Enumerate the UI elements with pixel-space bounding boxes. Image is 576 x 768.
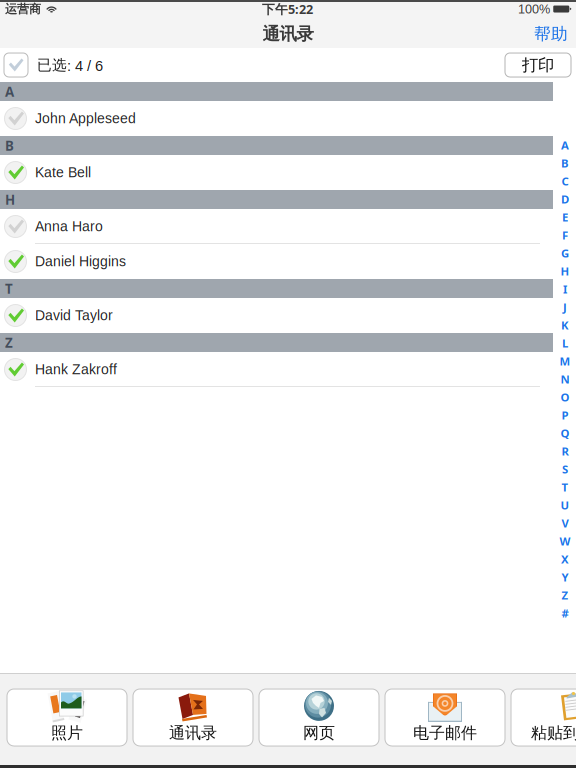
staticText: H: [560, 263, 569, 279]
button[interactable]: Q: [554, 424, 576, 442]
button[interactable]: 照片: [7, 689, 127, 746]
staticText: I: [563, 281, 567, 297]
button[interactable]: W: [554, 532, 576, 550]
staticText: 电子邮件: [413, 723, 477, 743]
staticText: David Taylor: [35, 308, 113, 323]
button[interactable]: I: [554, 280, 576, 298]
staticText: 粘贴到打印: [531, 723, 576, 743]
button[interactable]: X: [554, 550, 576, 568]
staticText: 下午5:22: [262, 0, 313, 18]
staticText: C: [561, 173, 568, 189]
staticText: Z: [561, 587, 568, 603]
button[interactable]: C: [554, 172, 576, 190]
staticText: A: [5, 82, 14, 101]
button[interactable]: V: [554, 514, 576, 532]
staticText: S: [562, 461, 568, 477]
button[interactable]: H: [554, 262, 576, 280]
button[interactable]: 帮助: [534, 18, 576, 49]
button[interactable]: 电子邮件: [385, 689, 505, 746]
button[interactable]: #: [554, 604, 576, 622]
staticText: 照片: [51, 723, 83, 743]
button[interactable]: U: [554, 496, 576, 514]
staticText: Kate Bell: [35, 165, 91, 180]
button[interactable]: O: [554, 388, 576, 406]
staticText: X: [561, 551, 569, 567]
staticText: Q: [560, 425, 569, 441]
staticText: 运营商: [5, 1, 41, 16]
staticText: B: [561, 155, 569, 171]
staticText: 通讯录: [169, 723, 217, 743]
button[interactable]: Z: [554, 586, 576, 604]
button[interactable]: Daniel Higgins: [0, 244, 576, 279]
staticText: Daniel Higgins: [35, 254, 126, 269]
button[interactable]: John Appleseed: [0, 101, 576, 136]
staticText: L: [562, 335, 568, 351]
button[interactable]: 打印: [505, 53, 576, 77]
staticText: D: [561, 191, 569, 207]
staticText: 通讯录: [262, 23, 313, 45]
staticText: H: [5, 190, 15, 209]
staticText: 已选: 4 / 6: [37, 56, 103, 74]
button[interactable]: N: [554, 370, 576, 388]
staticText: U: [560, 497, 569, 513]
button[interactable]: J: [554, 298, 576, 316]
staticText: 打印: [522, 55, 554, 75]
staticText: #: [561, 605, 568, 621]
staticText: 帮助: [534, 23, 568, 44]
button[interactable]: 通讯录: [133, 689, 253, 746]
button[interactable]: L: [554, 334, 576, 352]
button[interactable]: David Taylor: [0, 298, 576, 333]
button[interactable]: G: [554, 244, 576, 262]
button[interactable]: 粘贴到打印: [511, 689, 576, 746]
button[interactable]: P: [554, 406, 576, 424]
button[interactable]: D: [554, 190, 576, 208]
staticText: Z: [5, 333, 13, 352]
staticText: R: [561, 443, 568, 459]
button[interactable]: F: [554, 226, 576, 244]
staticText: B: [5, 136, 14, 155]
button[interactable]: Kate Bell: [0, 155, 576, 190]
staticText: N: [560, 371, 569, 387]
staticText: T: [5, 279, 13, 298]
button[interactable]: 网页: [259, 689, 379, 746]
staticText: John Appleseed: [35, 111, 136, 126]
button[interactable]: A: [554, 136, 576, 154]
staticText: J: [563, 299, 567, 315]
staticText: O: [560, 389, 569, 405]
staticText: A: [561, 137, 569, 153]
button[interactable]: R: [554, 442, 576, 460]
staticText: W: [559, 533, 570, 549]
button[interactable]: B: [554, 154, 576, 172]
button[interactable]: M: [554, 352, 576, 370]
button[interactable]: Hank Zakroff: [0, 352, 576, 387]
staticText: T: [561, 479, 568, 495]
staticText: F: [562, 227, 568, 243]
button[interactable]: Anna Haro: [0, 209, 576, 244]
button[interactable]: 已选: 4 / 6: [0, 49, 103, 81]
staticText: 100%: [518, 2, 550, 16]
staticText: G: [561, 245, 569, 261]
button[interactable]: S: [554, 460, 576, 478]
staticText: K: [561, 317, 569, 333]
staticText: P: [561, 407, 568, 423]
button[interactable]: K: [554, 316, 576, 334]
staticText: Anna Haro: [35, 219, 103, 234]
staticText: E: [562, 209, 568, 225]
staticText: 网页: [303, 723, 335, 743]
staticText: Hank Zakroff: [35, 362, 117, 377]
button[interactable]: Y: [554, 568, 576, 586]
button[interactable]: T: [554, 478, 576, 496]
staticText: M: [559, 353, 570, 369]
staticText: Y: [561, 569, 568, 585]
button[interactable]: E: [554, 208, 576, 226]
staticText: V: [561, 515, 568, 531]
